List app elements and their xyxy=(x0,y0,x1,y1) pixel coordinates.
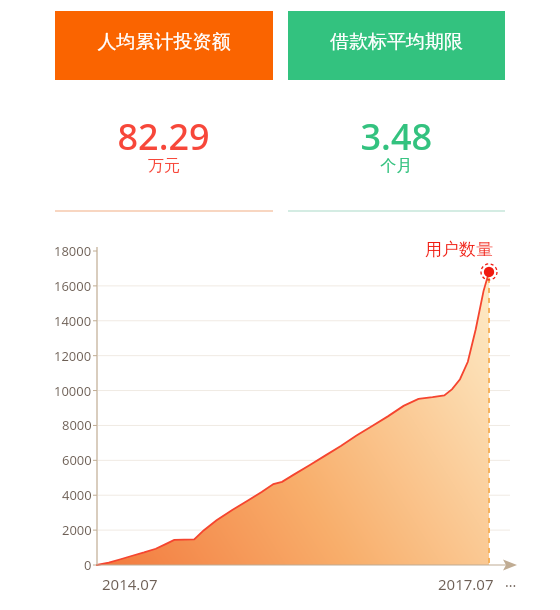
button[interactable]: 借款标平均期限 xyxy=(288,11,505,80)
button[interactable]: 人均累计投资额 xyxy=(55,11,273,80)
